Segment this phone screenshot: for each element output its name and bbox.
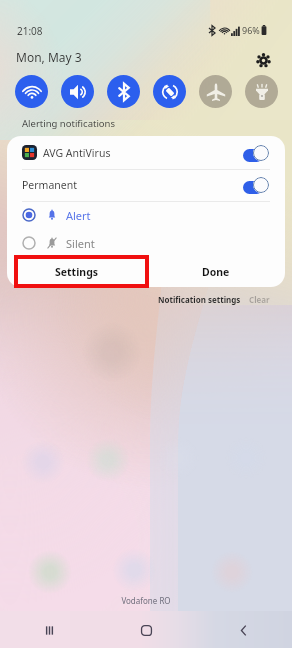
- button[interactable]: Recents: [0, 612, 98, 648]
- staticText: Done: [202, 265, 230, 279]
- staticText: Alerting notifications: [22, 117, 116, 130]
- staticText: Permanent: [22, 178, 78, 192]
- button[interactable]: Quick setting toggle: [15, 75, 48, 108]
- staticText: Settings: [55, 265, 99, 279]
- button[interactable]: Quick setting toggle: [61, 75, 94, 108]
- button[interactable]: Quick setting toggle: [107, 75, 140, 108]
- button[interactable]: Toggle: [243, 145, 269, 161]
- staticText: AVG AntiVirus: [43, 146, 111, 160]
- button[interactable]: Back: [195, 612, 292, 648]
- staticText: Mon, May 3: [16, 49, 82, 65]
- staticText: Alert: [66, 208, 91, 223]
- staticText: Vodafone RO: [0, 595, 292, 606]
- button[interactable]: Toggle: [243, 177, 269, 193]
- button[interactable]: Settings: [7, 257, 146, 287]
- staticText: 21:08: [17, 24, 43, 38]
- button[interactable]: Settings: [253, 50, 273, 70]
- button[interactable]: Quick setting toggle: [153, 75, 186, 108]
- button[interactable]: Quick setting toggle: [199, 75, 232, 108]
- button[interactable]: Quick setting toggle: [245, 75, 278, 108]
- button[interactable]: Home: [98, 612, 195, 648]
- staticText: Silent: [66, 236, 95, 251]
- button[interactable]: Notification settings: [158, 294, 241, 305]
- button[interactable]: Done: [146, 257, 285, 287]
- button[interactable]: Alert: [22, 201, 285, 229]
- button[interactable]: Silent: [22, 229, 285, 257]
- staticText: 96%: [242, 24, 260, 36]
- button[interactable]: Clear: [249, 294, 270, 305]
